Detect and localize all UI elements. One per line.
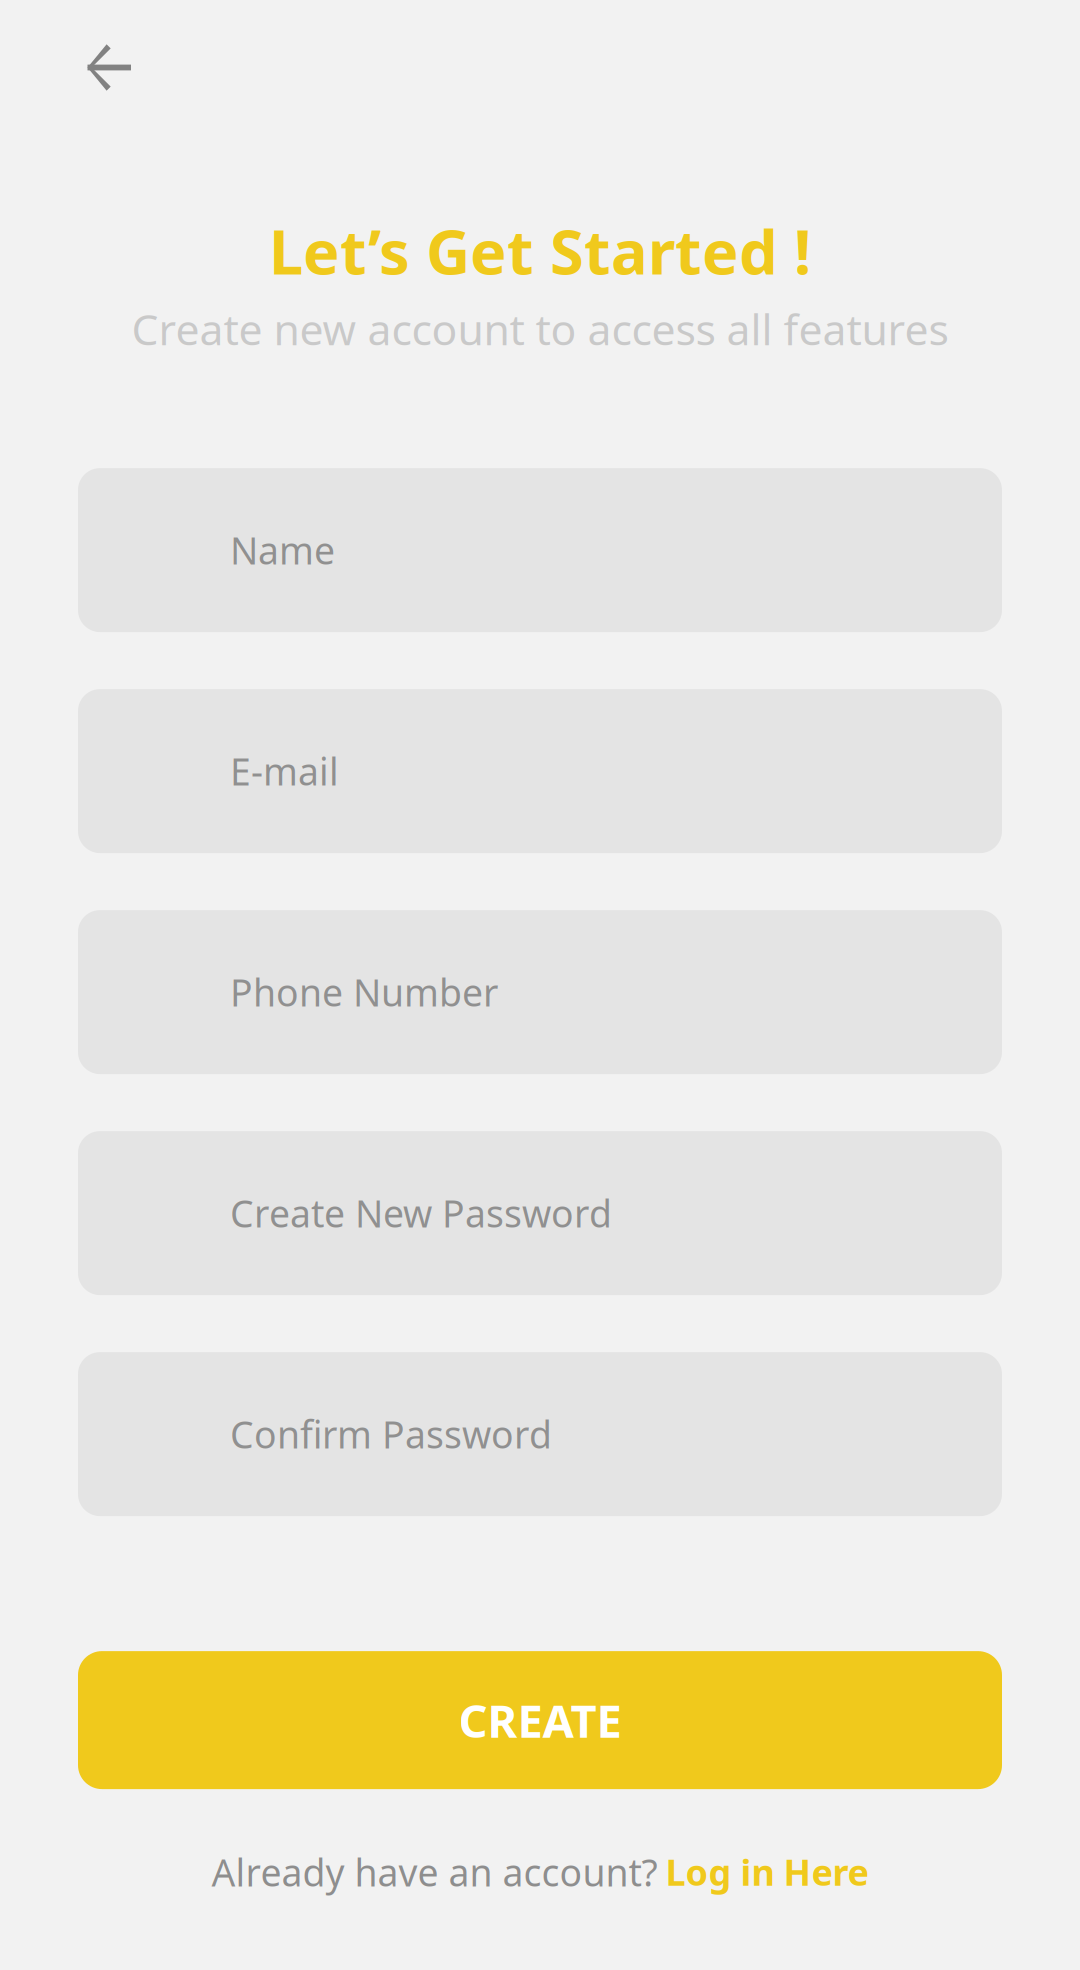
button[interactable]: Confirm Password [78,1352,1002,1516]
staticText: Already have an account? [211,1847,657,1897]
button[interactable]: Create New Password [78,1131,1002,1295]
staticText: Create new account to access all feature… [131,300,948,357]
button[interactable]: E-mail [78,689,1002,853]
staticText: Confirm Password [230,1409,552,1459]
staticText: Phone Number [230,967,498,1017]
staticText: Log in Here [665,1848,868,1896]
button[interactable]: Phone Number [78,910,1002,1074]
staticText: Create New Password [230,1188,612,1238]
button[interactable]: Name [78,468,1002,632]
staticText: Name [230,525,335,575]
button[interactable]: Back [64,29,154,106]
staticText: E-mail [230,746,339,796]
staticText: Let’s Get Started ! [269,210,811,291]
button[interactable]: CREATE [78,1651,1002,1789]
staticText: CREATE [458,1690,621,1750]
button[interactable]: Already have an account? [211,1847,868,1897]
